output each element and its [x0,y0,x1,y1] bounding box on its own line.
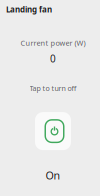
staticText: Tap to turn off [29,83,76,93]
staticText: Current power (W) [20,38,85,48]
staticText: Landing fan [6,4,52,15]
staticText: 0 [50,52,56,65]
button[interactable]: Turn off [35,112,71,150]
staticText: On [45,168,60,183]
